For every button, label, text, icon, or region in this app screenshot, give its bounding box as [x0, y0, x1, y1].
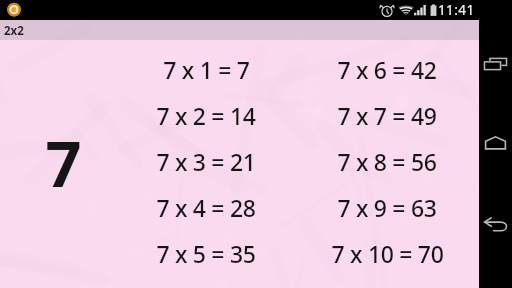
- staticText: 11:41: [438, 1, 475, 19]
- staticText: 7 x 10 = 70: [331, 238, 444, 269]
- button[interactable]: Home: [479, 117, 512, 168]
- staticText: 7 x 2 = 14: [156, 100, 256, 131]
- button[interactable]: 2x2: [0, 20, 479, 40]
- button[interactable]: Back: [479, 198, 512, 249]
- staticText: 7: [45, 120, 82, 206]
- staticText: 2x2: [4, 23, 24, 39]
- button[interactable]: Recents: [479, 38, 512, 89]
- staticText: 7 x 5 = 35: [156, 238, 256, 269]
- staticText: 7 x 8 = 56: [337, 146, 437, 177]
- staticText: 7 x 1 = 7: [163, 54, 250, 85]
- staticText: 7 x 3 = 21: [156, 146, 256, 177]
- staticText: 7 x 6 = 42: [337, 54, 437, 85]
- staticText: 7 x 7 = 49: [337, 100, 437, 131]
- staticText: 7 x 9 = 63: [337, 192, 437, 223]
- staticText: 7 x 4 = 28: [156, 192, 256, 223]
